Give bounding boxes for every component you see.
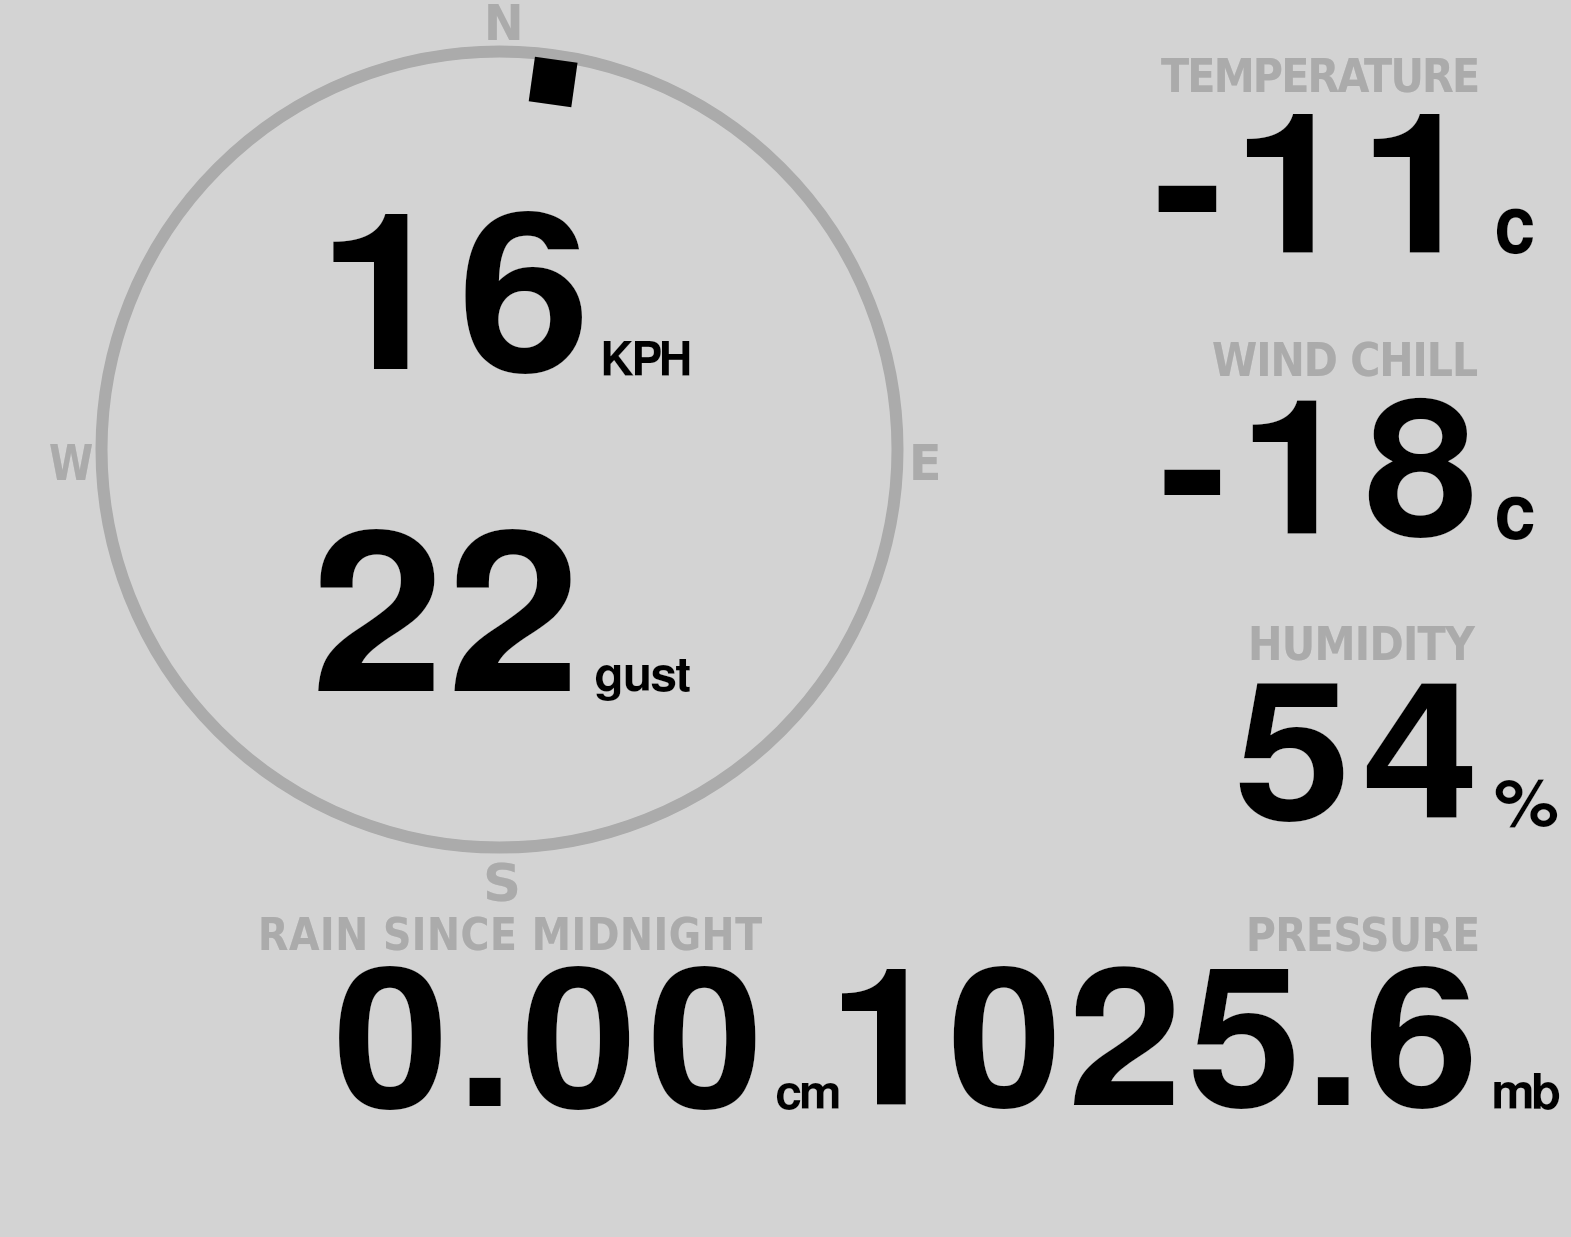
staticText: 0.00 [333, 951, 774, 1144]
staticText: -11 [1153, 96, 1486, 291]
button[interactable]: Rain since midnight 0.00 cm [250, 900, 850, 1120]
staticText: 16 [317, 195, 600, 413]
staticText: N [484, 0, 524, 51]
button[interactable]: Humidity 54 percent [1140, 605, 1560, 835]
staticText: gust [594, 653, 691, 701]
staticText: PRESSURE [1246, 909, 1480, 962]
button[interactable]: Wind chill minus 18 degrees Celsius [1140, 320, 1560, 550]
staticText: -18 [1159, 383, 1490, 571]
staticText: RAIN SINCE MIDNIGHT [258, 909, 763, 960]
staticText: c [1494, 188, 1535, 268]
staticText: mb [1491, 1070, 1558, 1119]
staticText: 1025.6 [828, 953, 1485, 1144]
staticText: % [1494, 773, 1559, 839]
staticText: TEMPERATURE [1161, 49, 1479, 102]
button[interactable]: Wind 16 KPH, gusting 22, from north [96, 46, 904, 854]
button[interactable]: Temperature minus 11 degrees Celsius [1140, 40, 1560, 270]
staticText: E [909, 433, 942, 491]
staticText: cm [775, 1071, 840, 1119]
staticText: c [1494, 477, 1536, 553]
staticText: WIND CHILL [1212, 334, 1478, 387]
staticText: HUMIDITY [1248, 617, 1475, 670]
staticText: S [483, 853, 522, 913]
staticText: W [49, 433, 93, 491]
staticText: KPH [600, 339, 691, 385]
staticText: 22 [311, 512, 584, 736]
button[interactable]: Pressure 1025.6 mb [860, 900, 1560, 1120]
staticText: 54 [1234, 667, 1489, 856]
